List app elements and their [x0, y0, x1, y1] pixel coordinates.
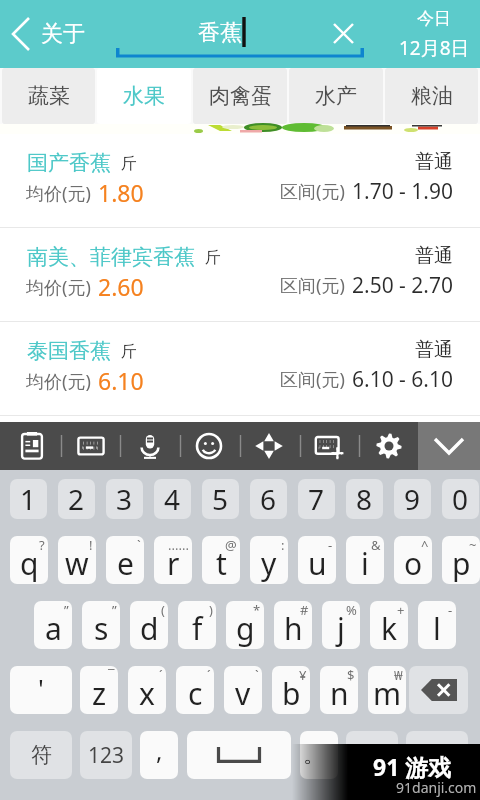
- staticText: c: [188, 673, 203, 714]
- button[interactable]: 国产香蕉: [0, 134, 480, 228]
- staticText: u: [308, 543, 327, 584]
- staticText: ......: [168, 536, 189, 554]
- button[interactable]: 123: [80, 731, 132, 779]
- staticText: ?: [39, 536, 45, 554]
- staticText: d: [140, 608, 159, 649]
- staticText: q: [20, 543, 39, 584]
- button[interactable]: 3: [106, 479, 143, 519]
- button[interactable]: ˋ: [224, 666, 262, 714]
- button[interactable]: 符: [10, 731, 72, 779]
- staticText: i: [361, 543, 369, 584]
- button[interactable]: 肉禽蛋: [193, 68, 287, 124]
- button[interactable]: @: [202, 536, 240, 584]
- staticText: s: [94, 608, 109, 649]
- button[interactable]: `: [106, 536, 144, 584]
- button[interactable]: #: [274, 601, 312, 649]
- button[interactable]: $: [320, 666, 358, 714]
- staticText: m: [373, 673, 402, 714]
- button[interactable]: ?: [10, 536, 48, 584]
- button[interactable]: :: [250, 536, 288, 584]
- button[interactable]: 6: [250, 479, 287, 519]
- staticText: 符: [31, 742, 52, 768]
- button[interactable]: 蔬菜: [2, 68, 95, 124]
- staticText: 区间(元): [280, 367, 345, 392]
- button[interactable]: [346, 731, 398, 779]
- staticText: x: [139, 673, 155, 714]
- button[interactable]: %: [322, 601, 360, 649]
- staticText: ˊ: [207, 666, 211, 684]
- button[interactable]: Settings: [363, 422, 415, 470]
- button[interactable]: 水果: [97, 68, 191, 124]
- button[interactable]: Clipboard: [6, 422, 58, 470]
- button[interactable]: Emoji: [183, 422, 235, 470]
- button[interactable]: 8: [346, 479, 383, 519]
- staticText: ¯: [108, 666, 115, 684]
- staticText: 4: [164, 480, 181, 518]
- button[interactable]: ': [10, 666, 72, 714]
- button[interactable]: -: [418, 601, 456, 649]
- staticText: 均价(元): [26, 181, 91, 206]
- button[interactable]: ): [178, 601, 216, 649]
- staticText: (: [161, 601, 165, 619]
- staticText: %: [346, 601, 357, 619]
- staticText: 斤: [121, 154, 137, 174]
- button[interactable]: ´: [128, 666, 166, 714]
- button[interactable]: 。: [300, 731, 338, 779]
- button[interactable]: Voice input: [124, 422, 176, 470]
- button[interactable]: 7: [298, 479, 335, 519]
- button[interactable]: ¯: [80, 666, 118, 714]
- staticText: -: [328, 536, 333, 554]
- button[interactable]: Backspace: [409, 666, 468, 714]
- button[interactable]: Space: [187, 731, 291, 779]
- staticText: t: [216, 543, 227, 584]
- staticText: p: [452, 543, 471, 584]
- staticText: n: [330, 673, 349, 714]
- button[interactable]: 5: [202, 479, 239, 519]
- button[interactable]: 2: [58, 479, 95, 519]
- button[interactable]: -: [298, 536, 336, 584]
- button[interactable]: Keyboard layout: [303, 422, 355, 470]
- staticText: 6.10 - 6.10: [352, 365, 454, 394]
- button[interactable]: *: [226, 601, 264, 649]
- button[interactable]: !: [58, 536, 96, 584]
- button[interactable]: 水产: [289, 68, 383, 124]
- button[interactable]: ,: [140, 731, 178, 779]
- button[interactable]: ”: [82, 601, 120, 649]
- staticText: ): [209, 601, 213, 619]
- button[interactable]: &: [346, 536, 384, 584]
- button[interactable]: ˊ: [176, 666, 214, 714]
- button[interactable]: Clear search: [325, 15, 361, 51]
- button[interactable]: 1: [10, 479, 47, 519]
- button[interactable]: 粮油: [385, 68, 478, 124]
- staticText: ^: [421, 536, 429, 554]
- button[interactable]: Switch keyboard: [65, 422, 117, 470]
- button[interactable]: ^: [394, 536, 432, 584]
- staticText: 斤: [121, 342, 137, 362]
- staticText: 普通: [415, 244, 453, 268]
- button[interactable]: ”: [34, 601, 72, 649]
- button[interactable]: 关于: [0, 0, 100, 68]
- button[interactable]: 南美、菲律宾香蕉: [0, 228, 480, 322]
- staticText: 区间(元): [280, 273, 345, 298]
- staticText: f: [192, 608, 203, 649]
- staticText: h: [284, 608, 303, 649]
- button[interactable]: 9: [394, 479, 431, 519]
- staticText: *: [253, 601, 261, 619]
- staticText: 肉禽蛋: [209, 83, 272, 109]
- button[interactable]: ~: [442, 536, 480, 584]
- button[interactable]: 0: [442, 479, 479, 519]
- button[interactable]: Hide keyboard: [418, 422, 480, 470]
- button[interactable]: 今日: [386, 0, 480, 68]
- button[interactable]: 泰国香蕉: [0, 322, 480, 416]
- button[interactable]: Move cursor: [243, 422, 295, 470]
- staticText: ~: [469, 536, 477, 554]
- button[interactable]: Enter: [406, 731, 468, 779]
- button[interactable]: ₩: [368, 666, 406, 714]
- button[interactable]: ¥: [272, 666, 310, 714]
- button[interactable]: ......: [154, 536, 192, 584]
- button[interactable]: (: [130, 601, 168, 649]
- staticText: l: [433, 608, 441, 649]
- button[interactable]: 4: [154, 479, 191, 519]
- button[interactable]: +: [370, 601, 408, 649]
- staticText: 8: [356, 480, 373, 518]
